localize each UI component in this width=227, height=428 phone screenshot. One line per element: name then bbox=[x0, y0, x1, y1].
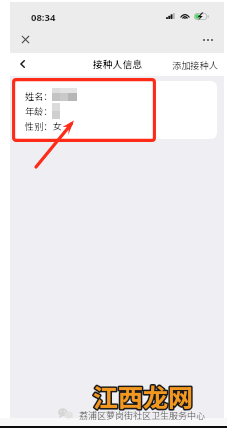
button[interactable] bbox=[14, 81, 217, 139]
button[interactable]: Back bbox=[13, 53, 31, 75]
staticText: 姓名： bbox=[25, 89, 53, 102]
staticText: 年龄： bbox=[25, 104, 53, 117]
staticText: 性别：女 bbox=[25, 119, 62, 132]
staticText: 接种人信息 bbox=[93, 57, 142, 71]
button[interactable]: More options bbox=[197, 30, 217, 49]
staticText: 08:34 bbox=[31, 11, 56, 24]
staticText: 添加接种人 bbox=[172, 58, 218, 71]
button[interactable]: Close bbox=[16, 30, 35, 49]
button[interactable]: 添加接种人 bbox=[171, 53, 219, 75]
staticText: 荔浦区萝岗街社区卫生服务中心 bbox=[79, 409, 206, 422]
